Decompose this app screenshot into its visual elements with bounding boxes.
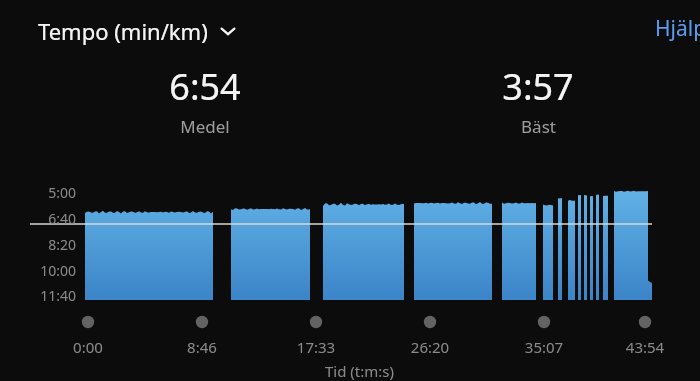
staticText: 3:57 <box>502 62 574 111</box>
staticText: Tempo (min/km) <box>38 16 208 46</box>
staticText: 11:40 <box>0 286 76 305</box>
button[interactable]: 6:54 <box>115 62 295 138</box>
button[interactable]: Hjälp <box>655 14 700 43</box>
staticText: 35:07 <box>499 337 589 357</box>
button[interactable]: Tempo (min/km) <box>36 12 240 50</box>
button[interactable]: 3:57 <box>448 62 628 138</box>
staticText: Bäst <box>521 115 556 138</box>
staticText: 8:20 <box>0 235 76 254</box>
staticText: Medel <box>180 115 230 138</box>
staticText: 8:46 <box>157 337 247 357</box>
staticText: Hjälp <box>655 14 700 43</box>
staticText: 6:40 <box>0 209 76 228</box>
staticText: 5:00 <box>0 183 76 202</box>
staticText: Tid (t:m:s) <box>325 361 395 381</box>
staticText: 0:00 <box>43 337 133 357</box>
staticText: 43:54 <box>600 337 690 357</box>
staticText: 6:54 <box>169 62 241 111</box>
staticText: 17:33 <box>271 337 361 357</box>
staticText: 10:00 <box>0 261 76 280</box>
staticText: 26:20 <box>385 337 475 357</box>
